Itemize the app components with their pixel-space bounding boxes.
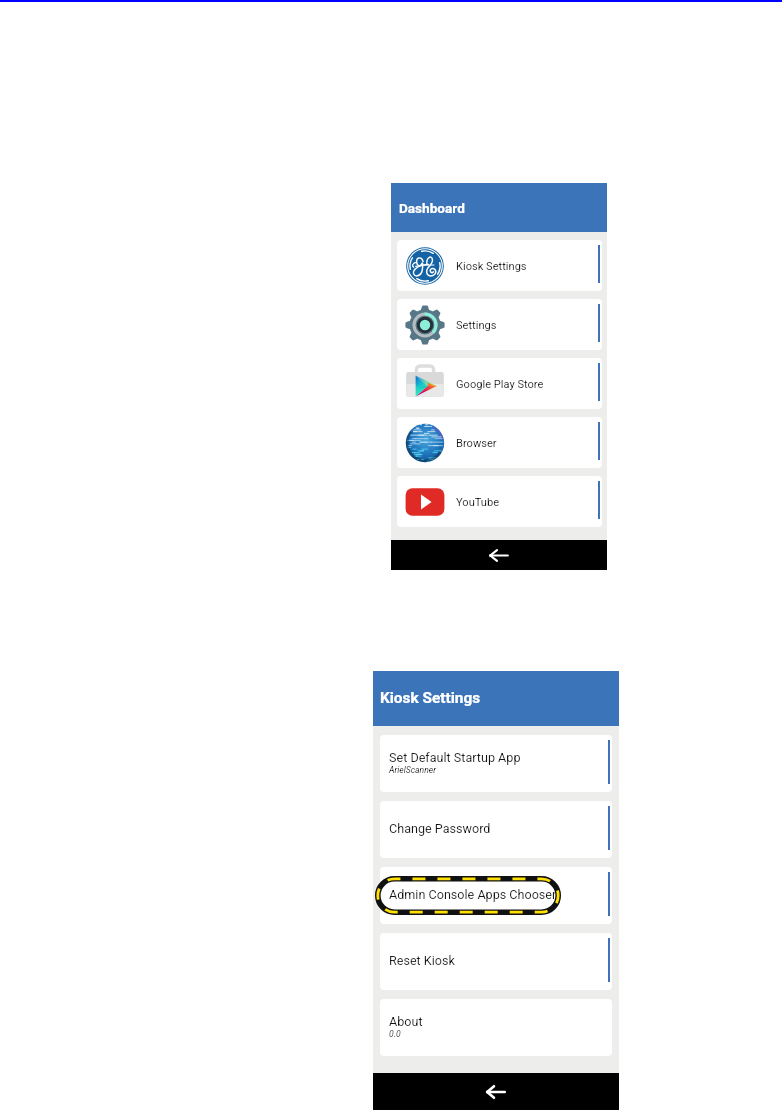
staticText: Change Password [389,821,491,836]
button[interactable]: Set Default Startup App [380,735,612,792]
staticText: Settings [456,319,497,332]
button[interactable]: Settings [397,299,602,350]
button[interactable]: About [380,999,612,1056]
button[interactable]: YouTube [397,476,602,527]
button[interactable]: Reset Kiosk [380,933,612,990]
staticText: Dashboard [399,200,465,216]
staticText: Kiosk Settings [456,260,527,273]
staticText: ArielScanner [389,765,437,775]
button[interactable]: Change Password [380,801,612,858]
staticText: Google Play Store [456,378,544,391]
button[interactable]: Admin Console Apps Chooser [380,867,612,924]
staticText: Kiosk Settings [380,689,481,707]
button[interactable]: Browser [397,417,602,468]
staticText: 0.0 [389,1029,401,1039]
staticText: Set Default Startup App [389,750,521,765]
staticText: Admin Console Apps Chooser [389,887,557,902]
button[interactable]: Google Play Store [397,358,602,409]
staticText: YouTube [456,496,500,509]
button[interactable]: Back [391,540,607,570]
staticText: About [389,1014,423,1029]
staticText: Browser [456,437,497,450]
staticText: Reset Kiosk [389,953,455,968]
button[interactable]: Back [373,1073,619,1110]
button[interactable]: Kiosk Settings [397,240,602,291]
